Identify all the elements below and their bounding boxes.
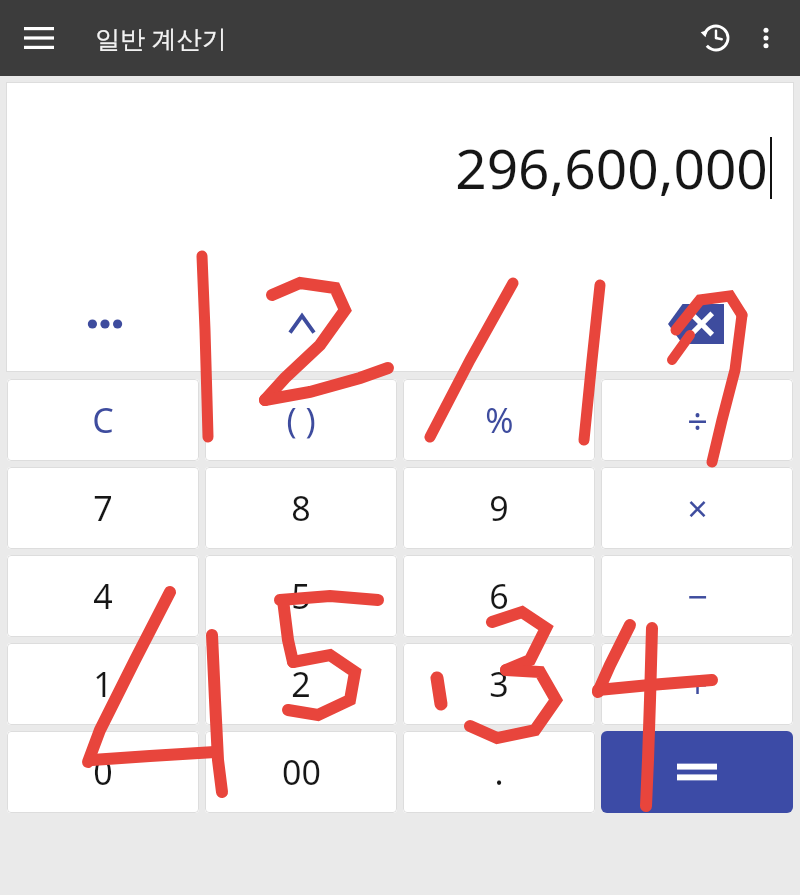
staticText: 00 <box>282 749 321 795</box>
button[interactable]: 1 <box>7 643 199 725</box>
button[interactable]: More <box>6 276 203 372</box>
button[interactable]: History <box>690 12 742 64</box>
button[interactable]: 8 <box>205 467 397 549</box>
button[interactable]: Menu <box>10 9 68 67</box>
button[interactable]: Backspace <box>597 276 794 372</box>
button[interactable]: 00 <box>205 731 397 813</box>
button[interactable]: . <box>403 731 595 813</box>
button[interactable]: Power <box>203 276 400 372</box>
button[interactable]: 7 <box>7 467 199 549</box>
staticText: 296,600,000 <box>455 130 768 205</box>
staticText: 5 <box>291 573 311 619</box>
staticText: % <box>485 397 514 443</box>
staticText: ( ) <box>286 397 316 443</box>
staticText: C <box>92 397 114 443</box>
button[interactable]: 4 <box>7 555 199 637</box>
button[interactable]: 3 <box>403 643 595 725</box>
button[interactable]: Empty <box>400 276 597 372</box>
button[interactable]: + <box>601 643 793 725</box>
button[interactable]: 0 <box>7 731 199 813</box>
staticText: 7 <box>93 485 113 531</box>
staticText: 3 <box>489 661 509 707</box>
staticText: × <box>687 484 708 533</box>
button[interactable]: More options <box>740 12 792 64</box>
button[interactable]: 5 <box>205 555 397 637</box>
staticText: 9 <box>489 485 509 531</box>
staticText: − <box>687 572 708 621</box>
button[interactable]: Equals <box>601 731 793 813</box>
staticText: 일반 계산기 <box>95 21 227 55</box>
button[interactable]: ( ) <box>205 379 397 461</box>
button[interactable]: C <box>7 379 199 461</box>
button[interactable]: 9 <box>403 467 595 549</box>
staticText: 8 <box>291 485 311 531</box>
staticText: 4 <box>93 573 113 619</box>
button[interactable]: % <box>403 379 595 461</box>
button[interactable]: 6 <box>403 555 595 637</box>
staticText: ÷ <box>687 396 708 445</box>
staticText: . <box>494 749 504 795</box>
staticText: 6 <box>489 573 509 619</box>
button[interactable]: × <box>601 467 793 549</box>
button[interactable]: 2 <box>205 643 397 725</box>
staticText: + <box>687 660 708 709</box>
staticText: 1 <box>93 661 113 707</box>
button[interactable]: − <box>601 555 793 637</box>
button[interactable]: ÷ <box>601 379 793 461</box>
staticText: 0 <box>93 749 113 795</box>
staticText: 2 <box>291 661 311 707</box>
